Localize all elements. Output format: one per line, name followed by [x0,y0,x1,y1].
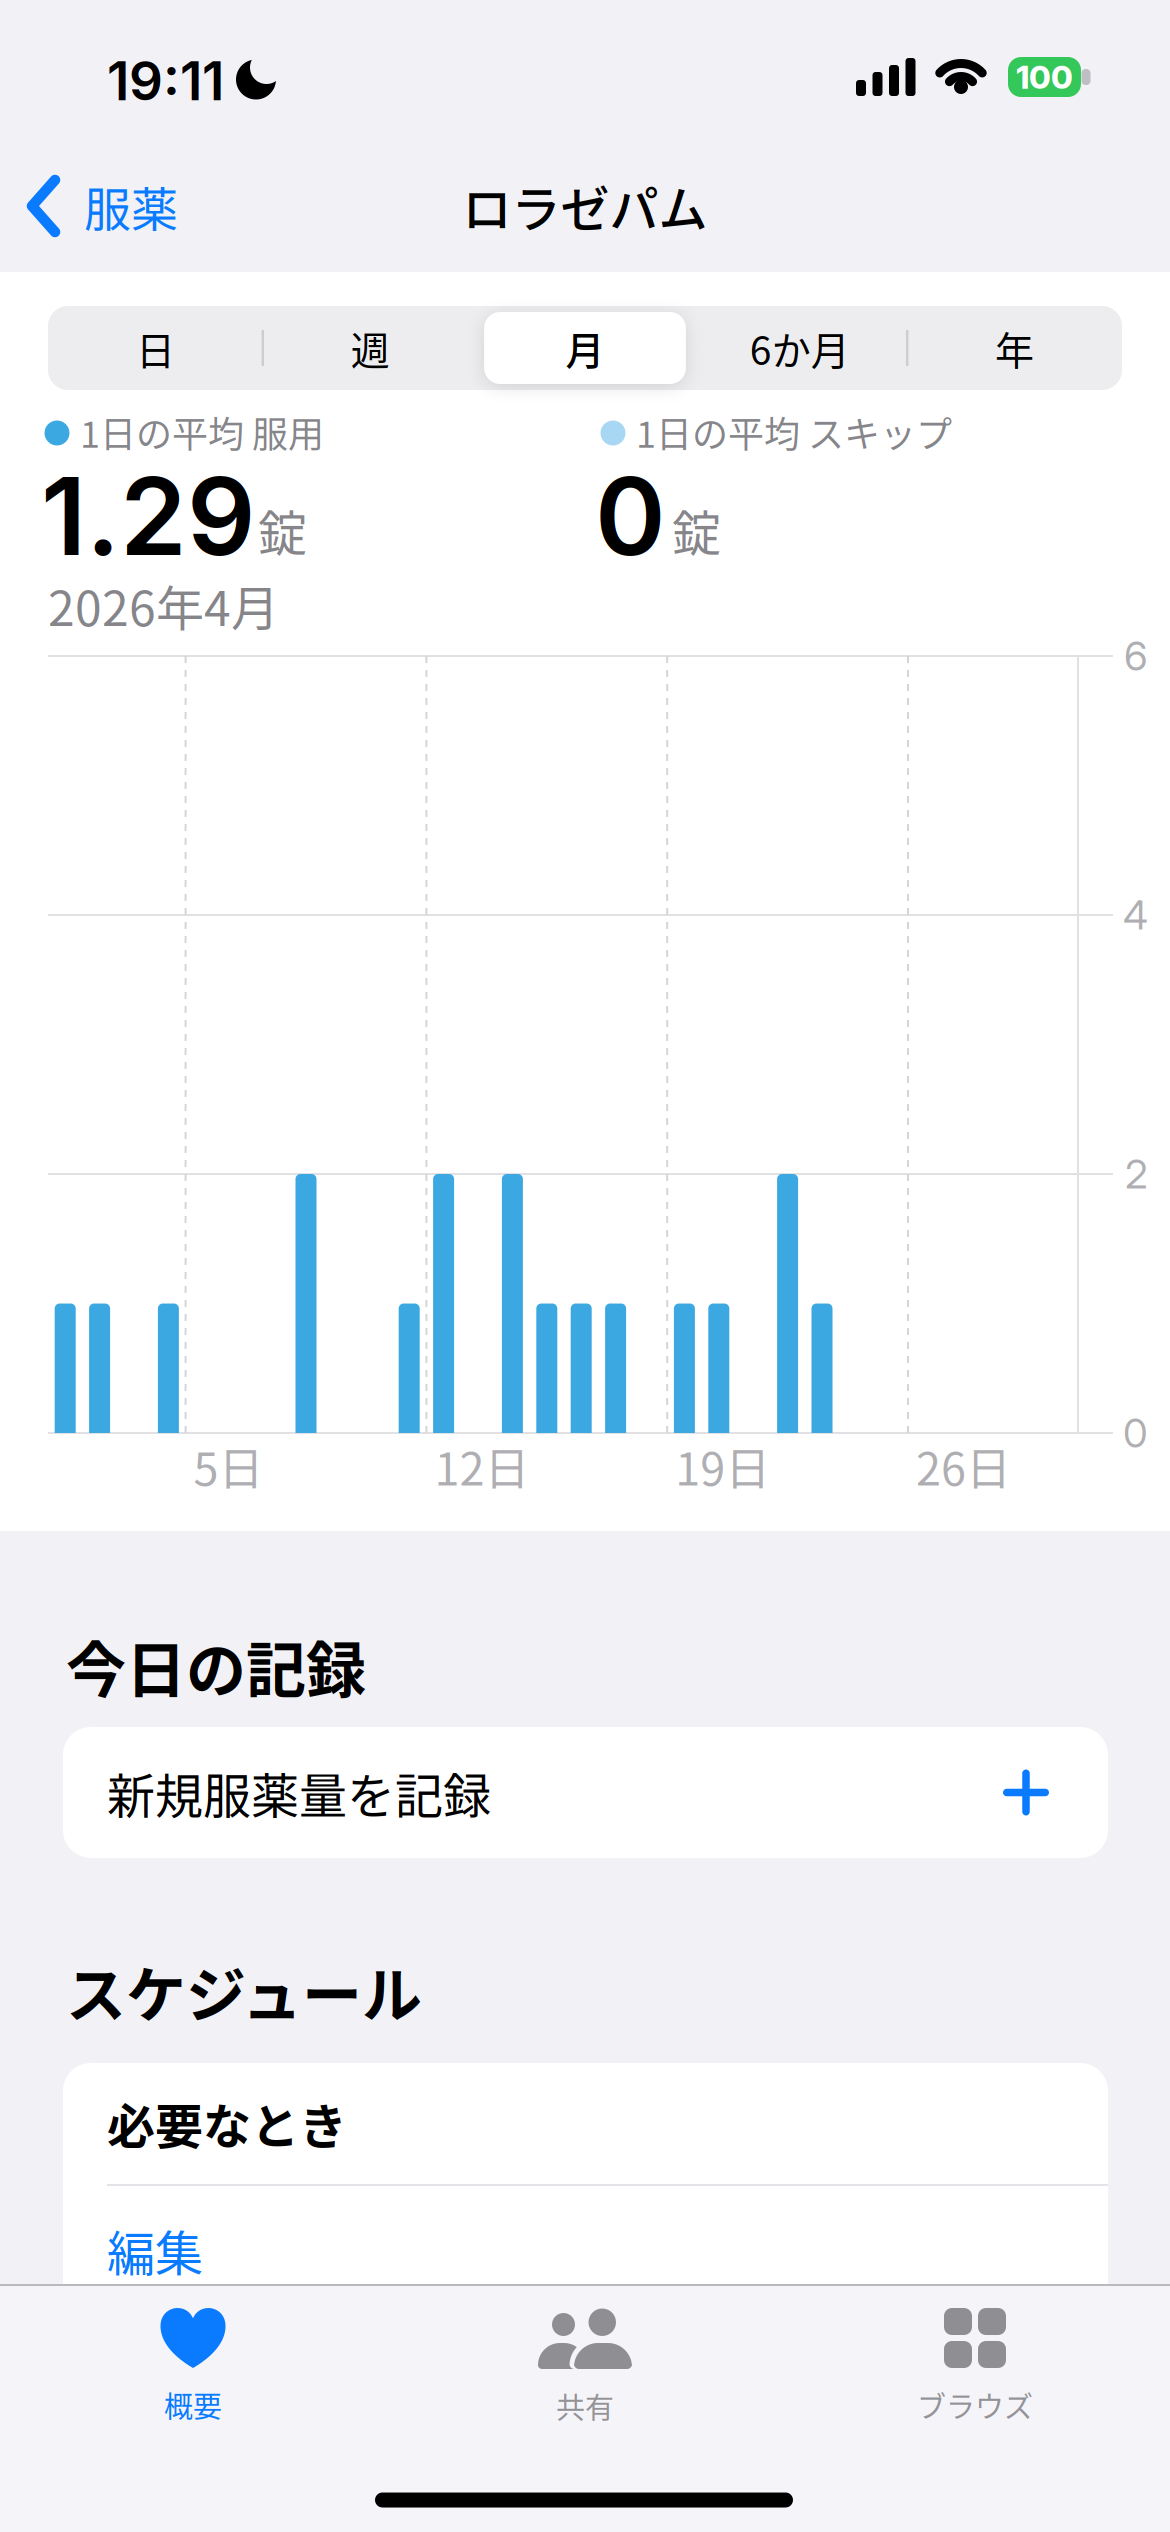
staticText: 必要なとき [107,2088,347,2158]
button[interactable]: 月 [478,306,692,390]
staticText: スケジュール [66,1948,422,2034]
staticText: 今日の記録 [66,1623,366,1709]
staticText: 1日の平均 服用 [80,406,324,458]
staticText: 服薬 [84,172,178,240]
staticText: 新規服薬量を記録 [107,1758,491,1827]
staticText: ブラウズ [917,2384,1033,2426]
staticText: 月 [565,320,604,376]
staticText: 年 [995,320,1034,376]
staticText: 0 [595,451,666,581]
staticText: 錠 [672,494,721,565]
staticText: 編集 [107,2215,203,2285]
staticText: 26日 [916,1433,1011,1499]
button[interactable]: 概要 [43,2292,343,2442]
staticText: 6か月 [750,320,850,376]
staticText: 週 [351,320,390,376]
staticText: 日 [136,320,175,376]
button[interactable]: 6か月 [692,306,907,390]
staticText: 錠 [258,494,307,565]
button[interactable]: 年 [907,306,1122,390]
button[interactable]: 週 [263,306,478,390]
staticText: 19:11 [107,49,224,113]
button[interactable]: 日 [48,306,263,390]
staticText: 100 [1016,58,1073,96]
button[interactable]: 共有 [435,2292,735,2442]
staticText: 19日 [675,1433,770,1499]
staticText: 共有 [556,2385,614,2427]
staticText: 0 [1123,1409,1148,1457]
staticText: 2026年4月 [48,570,279,640]
staticText: 5日 [194,1433,264,1499]
button[interactable]: 戻る 服薬 [27,161,247,251]
staticText: 12日 [434,1433,529,1499]
button[interactable]: 新規服薬量を記録 [63,1727,1108,1858]
staticText: 1.29 [41,451,255,581]
staticText: ロラゼパム [462,170,707,241]
staticText: 2 [1125,1150,1148,1198]
button[interactable]: ブラウズ [825,2292,1125,2442]
staticText: 6 [1124,632,1148,680]
staticText: 4 [1123,891,1148,939]
staticText: 概要 [164,2384,222,2426]
staticText: 1日の平均 スキップ [636,406,952,458]
button[interactable]: 編集 [63,2218,1108,2282]
